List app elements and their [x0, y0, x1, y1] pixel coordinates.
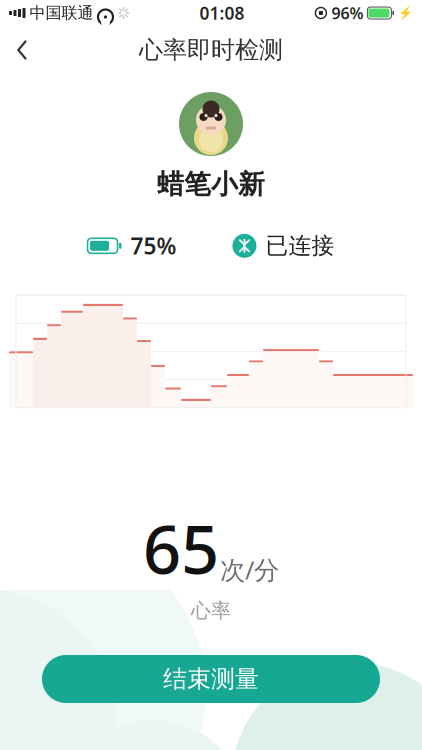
button[interactable]: 返回 [0, 28, 44, 72]
staticText: 01:08 [199, 1, 244, 24]
staticText: 已连接 [265, 232, 334, 260]
staticText: 蜡笔小新 [157, 168, 265, 201]
staticText: 65 [143, 504, 219, 592]
staticText: 心率 [191, 598, 231, 623]
staticText: ⚡ [398, 6, 413, 20]
staticText: 中国联通 [29, 3, 93, 23]
staticText: 96% [331, 2, 363, 24]
button[interactable]: 结束测量 [42, 655, 380, 703]
staticText: 次/分 [220, 553, 279, 586]
staticText: 心率即时检测 [139, 35, 283, 65]
staticText: 75% [130, 231, 176, 261]
staticText: 结束测量 [163, 664, 259, 694]
